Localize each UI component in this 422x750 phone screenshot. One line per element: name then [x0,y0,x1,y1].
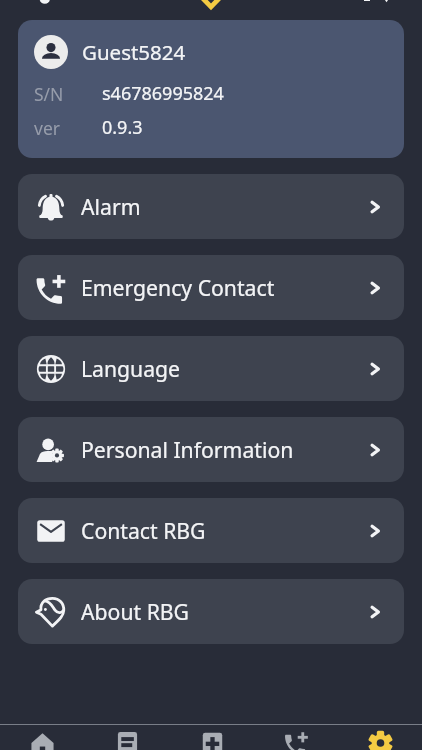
button[interactable]: Home [0,725,85,750]
button[interactable]: About RBG [18,579,404,644]
button[interactable]: Guest5824 [18,20,404,158]
staticText: About RBG [81,597,190,626]
staticText: Guest5824 [82,38,186,66]
staticText: Emergency Contact [81,273,275,302]
button[interactable]: Medical [170,725,254,750]
button[interactable]: Emergency Contact [18,255,404,320]
button[interactable]: Records [85,725,170,750]
button[interactable]: Emergency Call [254,725,338,750]
button[interactable]: Alarm [18,174,404,239]
staticText: Language [81,354,181,383]
staticText: Alarm [81,192,141,221]
staticText: ver [34,116,60,140]
button[interactable]: Contact RBG [18,498,404,563]
button[interactable]: Settings [338,725,422,750]
staticText: Personal Information [81,435,294,464]
staticText: s46786995824 [102,81,224,106]
staticText: Contact RBG [81,516,206,545]
staticText: 0.9.3 [102,115,143,140]
staticText: S/N [34,82,64,106]
button[interactable]: Personal Information [18,417,404,482]
button[interactable]: App bar [0,0,422,20]
button[interactable]: Language [18,336,404,401]
